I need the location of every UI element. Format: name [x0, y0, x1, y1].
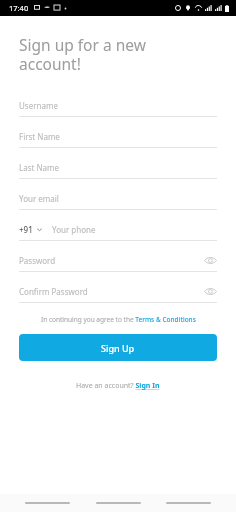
button[interactable]: Username [19, 95, 217, 117]
staticText: In continuing you agree to the Terms & C… [41, 315, 196, 324]
staticText: Password [19, 255, 56, 266]
staticText: First Name [19, 131, 60, 142]
button[interactable]: Navigation button [165, 495, 212, 511]
button[interactable]: Navigation button [95, 495, 142, 511]
button[interactable]: +91 [19, 219, 217, 241]
staticText: Your email [19, 193, 59, 204]
button[interactable]: Password [19, 250, 217, 272]
staticText: Your phone [52, 224, 96, 235]
button[interactable]: Have an account? Sign In [19, 381, 217, 391]
staticText: 17:40 [9, 3, 29, 13]
button[interactable]: Navigation button [24, 495, 71, 511]
button[interactable]: Confirm Password [19, 281, 217, 303]
other: Toggle password visibility [204, 287, 217, 296]
staticText: Have an account? Sign In [76, 381, 160, 391]
other: Toggle password visibility [204, 256, 217, 265]
button[interactable]: In continuing you agree to the Terms & C… [19, 315, 217, 324]
other: Select country code [36, 226, 43, 233]
staticText: Sign Up [101, 342, 135, 354]
button[interactable]: Last Name [19, 157, 217, 179]
button[interactable]: First Name [19, 126, 217, 148]
button[interactable]: Your email [19, 188, 217, 210]
staticText: Last Name [19, 162, 60, 173]
staticText: Username [19, 100, 58, 111]
staticText: +91 [19, 224, 33, 235]
staticText: Sign up for a new account! [19, 34, 146, 74]
staticText: Confirm Password [19, 286, 88, 297]
button[interactable]: Sign Up [19, 334, 217, 361]
